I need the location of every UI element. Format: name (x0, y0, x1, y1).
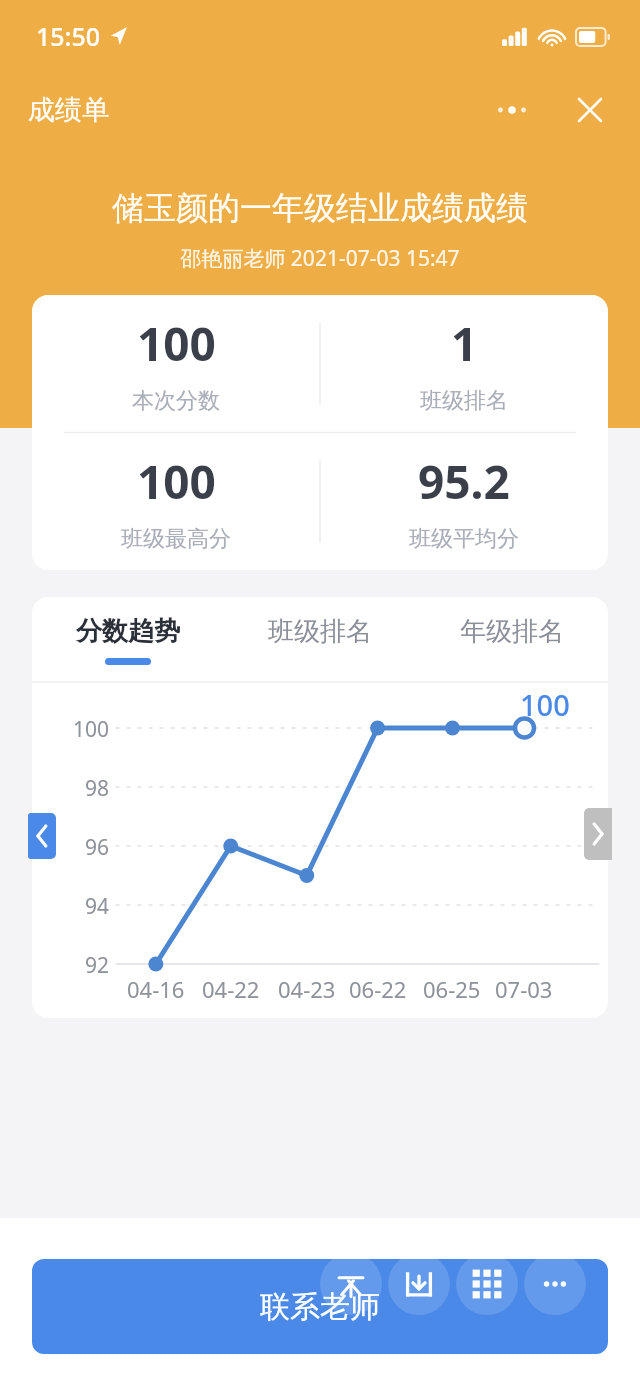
staticText: 1 (451, 312, 478, 375)
button[interactable]: Action (320, 1253, 382, 1315)
button[interactable]: Close (566, 86, 614, 134)
button[interactable]: Previous (28, 813, 56, 859)
staticText: 04-22 (202, 974, 260, 1004)
staticText: 年级排名 (460, 615, 564, 648)
staticText: 100 (73, 715, 110, 744)
staticText: 班级排名 (420, 387, 508, 415)
button[interactable]: 成绩单 (28, 93, 109, 127)
staticText: 04-23 (278, 974, 336, 1004)
staticText: 班级平均分 (409, 525, 519, 553)
staticText: 分数趋势 (76, 615, 180, 648)
button[interactable]: Download (388, 1253, 450, 1315)
staticText: 94 (85, 892, 110, 921)
button[interactable]: 100 (32, 432, 320, 570)
button[interactable]: 班级排名 (224, 597, 416, 683)
staticText: 100 (137, 450, 216, 513)
button[interactable]: 分数趋势 (32, 597, 224, 683)
staticText: 班级最高分 (121, 525, 231, 553)
staticText: 07-03 (495, 974, 553, 1004)
staticText: 邵艳丽老师 2021-07-03 15:47 (180, 244, 460, 273)
staticText: 15:50 (36, 19, 101, 53)
button[interactable]: Next (584, 808, 612, 860)
staticText: 班级排名 (268, 615, 372, 648)
staticText: 联系老师 (260, 1288, 380, 1326)
button[interactable]: Apps (456, 1253, 518, 1315)
button[interactable]: 1 (320, 295, 608, 432)
staticText: 95.2 (418, 450, 510, 513)
button[interactable]: More (484, 90, 540, 130)
staticText: 98 (85, 774, 110, 803)
button[interactable]: 联系老师 (32, 1259, 608, 1354)
button[interactable]: More options (524, 1253, 586, 1315)
staticText: 100 (520, 685, 570, 724)
staticText: 96 (85, 833, 110, 862)
staticText: 04-16 (127, 974, 185, 1004)
staticText: 100 (137, 312, 216, 375)
staticText: 06-22 (349, 974, 407, 1004)
staticText: 储玉颜的一年级结业成绩成绩 (112, 188, 528, 228)
staticText: 06-25 (423, 974, 481, 1004)
button[interactable]: 100 (32, 295, 320, 432)
staticText: 本次分数 (132, 387, 220, 415)
button[interactable]: 95.2 (320, 432, 608, 570)
button[interactable]: 年级排名 (416, 597, 608, 683)
staticText: 92 (85, 951, 110, 980)
